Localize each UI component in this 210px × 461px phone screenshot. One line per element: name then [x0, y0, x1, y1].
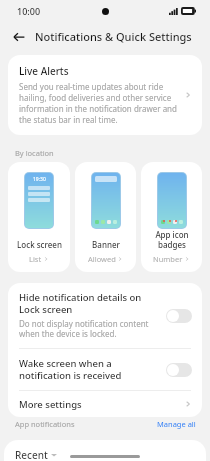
- staticText: Send you real-time updates about ride ha…: [19, 81, 180, 125]
- staticText: Allowed: [88, 254, 116, 264]
- staticText: 19:30: [33, 176, 46, 183]
- button[interactable]: Recent: [15, 448, 57, 461]
- button[interactable]: More settings: [8, 391, 202, 417]
- button[interactable]: Back: [8, 26, 30, 48]
- staticText: More settings: [19, 398, 184, 411]
- staticText: Live Alerts: [19, 64, 69, 78]
- button[interactable]: Hide notification details on Lock screen: [8, 283, 202, 348]
- button[interactable]: App icon badges: [141, 162, 202, 272]
- staticText: Recent: [15, 448, 48, 461]
- staticText: Banner: [92, 239, 120, 250]
- button[interactable]: Wake screen when a notification is recei…: [8, 349, 202, 390]
- staticText: Wake screen when a notification is recei…: [19, 357, 160, 382]
- button[interactable]: Banner: [75, 162, 136, 272]
- staticText: By location: [15, 148, 54, 158]
- staticText: Number: [153, 254, 183, 264]
- staticText: App notifications: [15, 419, 157, 429]
- staticText: 10:00: [17, 5, 41, 17]
- staticText: Manage all: [157, 419, 196, 429]
- staticText: App icon badges: [155, 229, 189, 250]
- staticText: Do not display notification content when…: [19, 318, 160, 340]
- button[interactable]: Toggle: [166, 363, 192, 377]
- button[interactable]: Toggle: [166, 309, 192, 323]
- button[interactable]: 19:30: [8, 162, 70, 272]
- button[interactable]: Live Alerts: [8, 55, 202, 135]
- staticText: List: [29, 254, 42, 264]
- staticText: Notifications & Quick Settings: [35, 29, 192, 44]
- staticText: Lock screen: [17, 239, 62, 250]
- staticText: Hide notification details on Lock screen: [19, 291, 160, 316]
- button[interactable]: Manage all: [157, 419, 196, 429]
